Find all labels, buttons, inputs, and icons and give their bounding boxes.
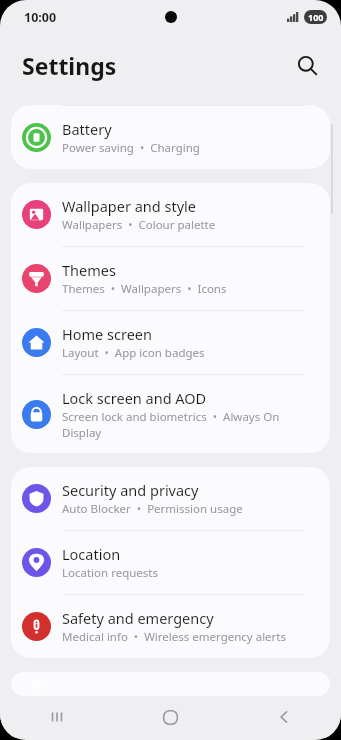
staticText: Settings xyxy=(22,50,117,81)
staticText: Medical info • Wireless emergency alerts xyxy=(62,629,286,645)
staticText: Lock screen and AOD xyxy=(62,388,207,408)
staticText: Screen lock and biometrics • Always On D… xyxy=(62,409,312,440)
staticText: Location xyxy=(62,544,121,564)
button[interactable]: Lock screen and AOD xyxy=(11,375,330,453)
button[interactable]: Wallpaper and style xyxy=(11,183,330,246)
staticText: Location requests xyxy=(62,565,158,581)
button[interactable]: Search xyxy=(287,45,327,85)
staticText: Battery xyxy=(62,119,112,139)
button[interactable]: Safety and emergency xyxy=(11,595,330,658)
staticText: Auto Blocker • Permission usage xyxy=(62,501,243,517)
button[interactable]: Back xyxy=(227,696,341,738)
button[interactable]: Recent apps xyxy=(0,696,113,738)
staticText: Security and privacy xyxy=(62,480,199,500)
staticText: Themes • Wallpapers • Icons xyxy=(62,281,227,297)
button[interactable]: Home screen xyxy=(11,311,330,374)
staticText: Home screen xyxy=(62,324,152,344)
staticText: 100 xyxy=(308,11,324,23)
button[interactable]: Battery xyxy=(11,106,330,169)
staticText: Layout • App icon badges xyxy=(62,345,205,361)
button[interactable]: Themes xyxy=(11,247,330,310)
button[interactable]: Security and privacy xyxy=(11,467,330,530)
button[interactable]: Home xyxy=(113,696,227,738)
staticText: Wallpaper and style xyxy=(62,196,196,216)
staticText: 10:00 xyxy=(24,9,57,26)
staticText: Safety and emergency xyxy=(62,608,214,628)
staticText: Power saving • Charging xyxy=(62,140,200,156)
button[interactable]: Location xyxy=(11,531,330,594)
staticText: Themes xyxy=(62,260,116,280)
staticText: Wallpapers • Colour palette xyxy=(62,217,216,233)
